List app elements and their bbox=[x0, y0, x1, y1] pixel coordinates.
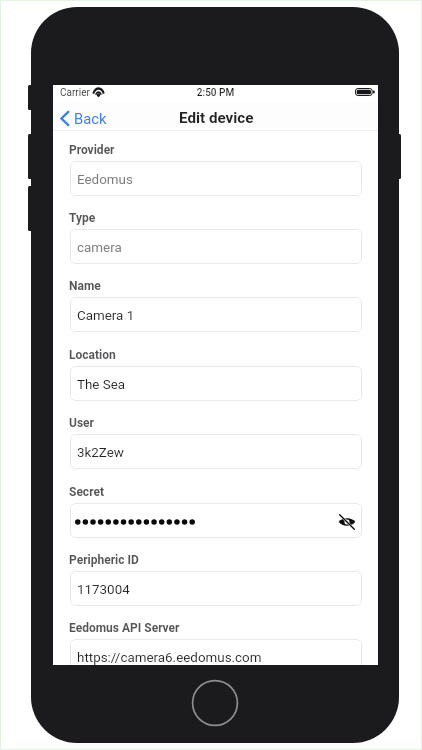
staticText: Edit device bbox=[179, 109, 254, 127]
button[interactable]: Back bbox=[55, 106, 112, 131]
staticText: The Sea bbox=[77, 377, 126, 393]
staticText: 1173004 bbox=[77, 582, 130, 598]
button[interactable]: Show password bbox=[335, 510, 359, 534]
staticText: https://camera6.eedomus.com bbox=[77, 650, 262, 665]
staticText: Secret bbox=[69, 485, 104, 499]
staticText: Eedomus bbox=[77, 172, 133, 188]
staticText: Back bbox=[74, 110, 107, 127]
staticText: Peripheric ID bbox=[69, 553, 139, 567]
staticText: User bbox=[69, 416, 94, 430]
staticText: Location bbox=[69, 348, 116, 362]
button[interactable]: camera bbox=[70, 229, 362, 264]
staticText: Type bbox=[69, 211, 96, 225]
button[interactable]: https://camera6.eedomus.com bbox=[70, 639, 362, 665]
staticText: Camera 1 bbox=[77, 308, 135, 324]
staticText: Carrier bbox=[60, 87, 90, 99]
staticText: Name bbox=[69, 279, 101, 293]
staticText: 3k2Zew bbox=[77, 445, 124, 461]
staticText: Eedomus API Server bbox=[69, 621, 180, 635]
button[interactable]: The Sea bbox=[70, 366, 362, 401]
button[interactable]: Eedomus bbox=[70, 161, 362, 196]
staticText: camera bbox=[77, 240, 122, 256]
button[interactable]: Camera 1 bbox=[70, 297, 362, 332]
button[interactable]: Show password bbox=[70, 503, 362, 538]
button[interactable]: 3k2Zew bbox=[70, 434, 362, 469]
button[interactable]: 1173004 bbox=[70, 571, 362, 606]
staticText: Provider bbox=[69, 143, 115, 157]
staticText: 2:50 PM bbox=[53, 87, 378, 99]
